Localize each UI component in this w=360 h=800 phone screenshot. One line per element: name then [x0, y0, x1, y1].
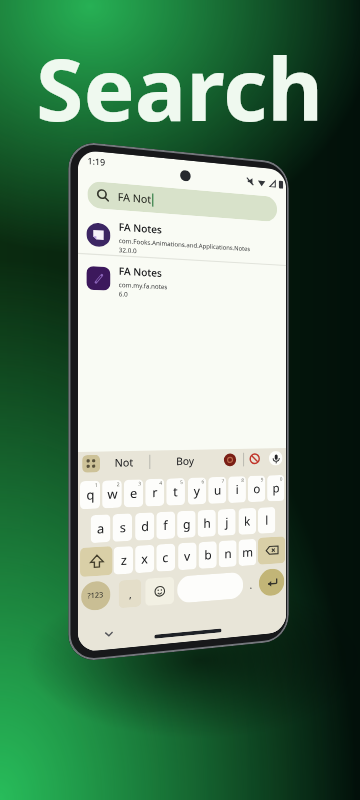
button[interactable] — [259, 568, 284, 597]
button[interactable]: l — [258, 507, 275, 534]
staticText: j — [225, 514, 229, 531]
button[interactable]: h — [198, 510, 216, 537]
staticText: m — [242, 544, 253, 561]
staticText: ?123 — [87, 590, 104, 601]
button[interactable]: p — [267, 475, 284, 501]
button[interactable]: , — [119, 579, 141, 608]
staticText: d — [141, 518, 149, 535]
staticText: s — [120, 519, 126, 536]
button[interactable] — [258, 536, 285, 565]
button[interactable]: k — [238, 508, 256, 535]
staticText: q — [86, 486, 95, 504]
staticText: w — [107, 485, 118, 503]
button[interactable]: g — [177, 510, 196, 538]
button[interactable]: i — [228, 476, 246, 503]
button[interactable]: a — [91, 514, 110, 543]
staticText: k — [244, 513, 251, 530]
staticText: 1:19 — [87, 155, 105, 169]
staticText: . — [250, 578, 252, 592]
staticText: v — [184, 548, 191, 565]
button[interactable]: r — [145, 479, 164, 507]
button[interactable]: e — [124, 479, 143, 508]
staticText: g — [183, 516, 191, 533]
button[interactable] — [177, 572, 243, 604]
button[interactable]: w — [102, 480, 122, 508]
staticText: 9 — [261, 476, 263, 483]
staticText: o — [253, 480, 261, 497]
staticText: r — [152, 484, 158, 501]
staticText: e — [130, 484, 138, 502]
button[interactable]: c — [156, 543, 175, 572]
button[interactable]: FA Notes — [119, 219, 281, 263]
staticText: FA Notes — [119, 263, 162, 280]
button[interactable]: m — [238, 539, 256, 566]
button[interactable]: u — [208, 477, 226, 504]
staticText: t — [173, 483, 178, 500]
staticText: u — [214, 482, 221, 499]
staticText: 1 — [95, 482, 98, 489]
button[interactable]: FA Notes — [119, 263, 281, 304]
staticText: FA Notes — [119, 219, 162, 237]
staticText: 2 — [117, 481, 120, 488]
button[interactable]: y — [188, 477, 206, 505]
staticText: Search — [36, 29, 324, 146]
button[interactable]: n — [219, 540, 237, 567]
button[interactable]: o — [248, 475, 265, 502]
staticText: FA Not — [118, 189, 151, 206]
button[interactable]: Not — [115, 455, 134, 470]
staticText: p — [273, 480, 280, 496]
staticText: y — [194, 482, 200, 500]
staticText: 5 — [180, 479, 183, 486]
button[interactable] — [269, 451, 282, 466]
staticText: 6.0 — [119, 289, 128, 298]
staticText: com.my.fa.notes — [119, 280, 168, 290]
staticText: 7 — [221, 478, 224, 485]
staticText: 3 — [138, 480, 141, 487]
staticText: n — [224, 545, 232, 562]
button[interactable]: t — [166, 478, 185, 506]
button[interactable]: s — [112, 513, 132, 542]
staticText: 6 — [201, 478, 204, 485]
staticText: h — [203, 515, 211, 532]
staticText: 4 — [159, 480, 162, 487]
staticText: b — [204, 546, 212, 564]
staticText: a — [97, 520, 105, 538]
staticText: l — [265, 512, 269, 529]
button[interactable] — [80, 546, 112, 577]
button[interactable]: v — [178, 542, 197, 570]
button[interactable]: FA Not — [87, 181, 277, 222]
staticText: 8 — [241, 477, 244, 484]
staticText: c — [162, 549, 169, 566]
staticText: z — [121, 551, 127, 569]
button[interactable]: . — [245, 571, 256, 598]
button[interactable] — [82, 455, 100, 473]
staticText: f — [163, 517, 168, 534]
button[interactable]: ?123 — [81, 580, 110, 611]
staticText: 0 — [280, 476, 282, 483]
staticText: i — [236, 481, 239, 498]
button[interactable]: z — [114, 546, 133, 575]
button[interactable]: j — [218, 509, 236, 536]
button[interactable]: d — [135, 512, 154, 541]
button[interactable]: x — [135, 545, 154, 573]
staticText: , — [129, 587, 132, 601]
button[interactable]: Boy — [176, 454, 195, 468]
button[interactable] — [145, 577, 174, 606]
button[interactable]: f — [156, 511, 175, 539]
staticText: x — [141, 550, 148, 568]
staticText: 32.0.0 — [119, 245, 137, 254]
staticText: com.Fooks.Animations.and.Applications.No… — [119, 236, 269, 253]
button[interactable]: q — [80, 481, 100, 509]
button[interactable]: b — [199, 541, 217, 569]
